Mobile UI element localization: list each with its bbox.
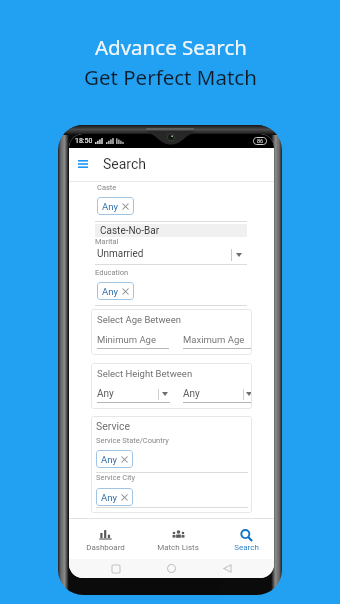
button[interactable]: Back	[217, 559, 237, 578]
button[interactable]: Match Lists	[147, 519, 209, 555]
staticText: Search	[234, 543, 259, 552]
button[interactable]: Any	[183, 389, 252, 403]
staticText: Maximum Age	[183, 334, 245, 345]
button[interactable]: Any	[97, 197, 134, 215]
staticText: Select Height Between	[97, 368, 193, 379]
staticText: Any	[102, 201, 118, 212]
staticText: Match Lists	[157, 543, 199, 552]
button[interactable]: Any	[96, 450, 133, 468]
staticText: 18:50	[75, 137, 93, 145]
staticText: Advance Search	[95, 33, 247, 61]
button[interactable]: Recent apps	[106, 559, 126, 578]
staticText: Dashboard	[86, 543, 125, 552]
staticText: Service State/Country	[96, 436, 169, 445]
button[interactable]: Home	[161, 559, 181, 578]
staticText: Any	[101, 454, 117, 465]
staticText: Unmarried	[97, 248, 144, 260]
button[interactable]: Dashboard	[74, 519, 136, 555]
staticText: Service City	[96, 473, 135, 482]
staticText: Service	[96, 420, 131, 432]
staticText: Select Age Between	[97, 314, 181, 325]
staticText: Any	[102, 286, 118, 297]
staticText: Search	[103, 156, 147, 172]
button[interactable]: Any	[97, 389, 170, 403]
button[interactable]: Minimum Age	[97, 335, 169, 349]
staticText: Marital	[95, 237, 119, 246]
button[interactable]: Caste-No-Bar	[95, 224, 247, 237]
button[interactable]: Maximum Age	[183, 335, 251, 349]
staticText: Minimum Age	[97, 334, 156, 345]
button[interactable]: Open navigation menu	[73, 152, 93, 176]
staticText: Any	[183, 388, 200, 400]
staticText: Caste	[97, 183, 117, 192]
staticText: Caste-No-Bar	[100, 225, 160, 237]
staticText: 86	[257, 138, 264, 144]
button[interactable]: Search	[215, 519, 274, 555]
staticText: Any	[97, 388, 114, 400]
staticText: Get Perfect Match	[84, 63, 257, 91]
staticText: Any	[101, 492, 117, 503]
button[interactable]: Any	[96, 488, 133, 506]
staticText: Education	[95, 268, 129, 277]
button[interactable]: Any	[97, 282, 134, 300]
